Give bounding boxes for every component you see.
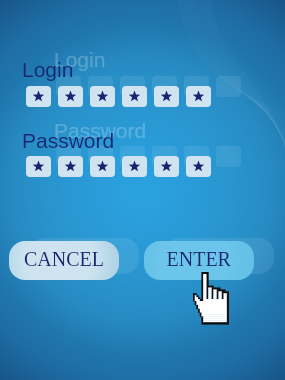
button[interactable] <box>9 241 119 280</box>
other: Pointer <box>193 272 237 330</box>
button[interactable] <box>144 241 254 280</box>
